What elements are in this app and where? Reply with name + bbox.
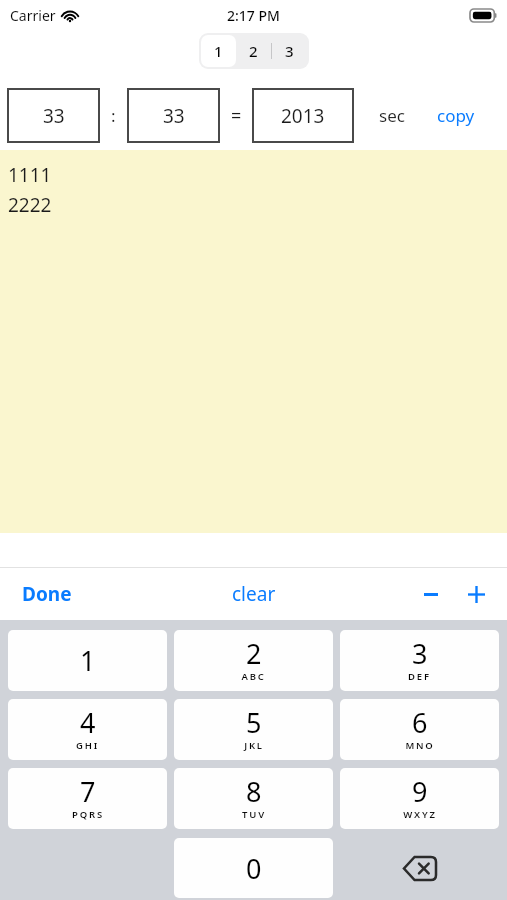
staticText: TUV	[242, 808, 266, 821]
staticText: DEF	[408, 670, 431, 683]
staticText: sec	[379, 104, 405, 127]
staticText: 8	[246, 773, 262, 810]
staticText: clear	[232, 581, 276, 607]
staticText: 2	[246, 635, 262, 672]
button[interactable]: 2	[236, 35, 271, 67]
button[interactable]: 7	[8, 768, 167, 829]
staticText: 2:17 PM	[227, 6, 280, 25]
button[interactable]: 5	[174, 699, 333, 760]
button[interactable]: 9	[340, 768, 499, 829]
button[interactable]: copy	[433, 100, 479, 131]
staticText: 33	[43, 103, 65, 129]
staticText: 2222	[8, 192, 52, 218]
button[interactable]: clear	[222, 575, 286, 613]
staticText: MNO	[405, 739, 435, 752]
button[interactable]: 33	[7, 88, 100, 143]
staticText: 1111	[8, 162, 52, 188]
staticText: 7	[80, 773, 96, 810]
staticText: 6	[412, 704, 428, 741]
button[interactable]: 4	[8, 699, 167, 760]
staticText: 33	[163, 103, 185, 129]
button[interactable]: 2	[174, 630, 333, 691]
button[interactable]: 3	[340, 630, 499, 691]
staticText: 5	[246, 704, 262, 741]
button[interactable]: 1	[8, 630, 167, 691]
staticText: =	[231, 103, 242, 128]
staticText: Done	[22, 581, 72, 607]
staticText: ABC	[241, 670, 266, 683]
staticText: 3	[285, 41, 294, 61]
staticText: 1	[214, 41, 223, 61]
staticText: Carrier	[10, 6, 56, 25]
button[interactable]: 2013	[252, 88, 354, 143]
staticText: 9	[412, 773, 428, 810]
button[interactable]: 6	[340, 699, 499, 760]
button[interactable]: Increase	[459, 577, 493, 611]
staticText: JKL	[244, 739, 264, 752]
staticText: 0	[246, 850, 262, 887]
button[interactable]: 33	[127, 88, 220, 143]
staticText: 4	[80, 704, 96, 741]
staticText: 2	[249, 41, 258, 61]
button[interactable]: 8	[174, 768, 333, 829]
staticText: PQRS	[72, 808, 104, 821]
staticText: 1	[80, 642, 96, 679]
staticText: 2013	[281, 103, 325, 129]
button[interactable]: 0	[174, 838, 333, 898]
staticText: copy	[437, 104, 475, 127]
button[interactable]: Done	[14, 575, 80, 613]
button[interactable]: 3	[272, 35, 307, 67]
button[interactable]: 1	[201, 35, 236, 67]
staticText: WXYZ	[403, 808, 437, 821]
button[interactable]: Delete	[340, 838, 499, 898]
button[interactable]: Decrease	[414, 577, 448, 611]
staticText: 3	[412, 635, 428, 672]
staticText: :	[111, 104, 116, 127]
staticText: GHI	[76, 739, 99, 752]
